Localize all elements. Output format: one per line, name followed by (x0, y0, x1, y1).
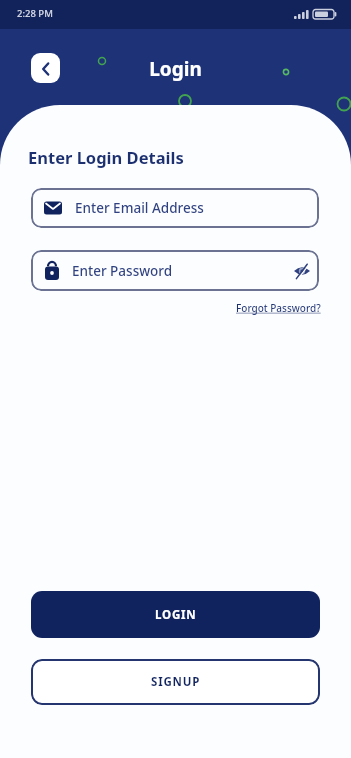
button[interactable] (293, 262, 311, 280)
staticText: Enter Login Details (28, 146, 184, 168)
button[interactable]: LOGIN (31, 591, 320, 638)
button[interactable]: SIGNUP (31, 659, 320, 705)
button[interactable]: Enter Password (31, 250, 319, 291)
staticText: SIGNUP (151, 674, 201, 690)
staticText: Login (0, 56, 351, 82)
staticText: LOGIN (155, 607, 197, 623)
staticText: 2:28 PM (17, 7, 53, 20)
button[interactable] (31, 53, 60, 83)
button[interactable]: Enter Email Address (31, 188, 319, 228)
button[interactable]: Forgot Password? (236, 301, 321, 315)
staticText: Enter Password (72, 262, 173, 280)
staticText: Enter Email Address (75, 199, 204, 217)
